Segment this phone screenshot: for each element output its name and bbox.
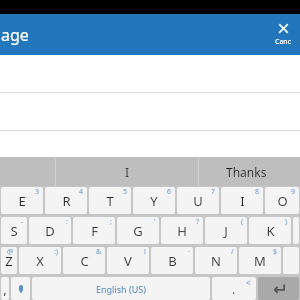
button[interactable]: X xyxy=(19,247,61,274)
staticText: 8 xyxy=(255,187,260,197)
staticText: B xyxy=(168,252,177,270)
other: Voice input xyxy=(11,277,30,300)
button[interactable]: Y xyxy=(133,187,175,214)
button[interactable]: Voice input xyxy=(11,277,30,300)
button[interactable]: R xyxy=(45,187,87,214)
button[interactable]: J xyxy=(205,217,247,244)
button[interactable]: F xyxy=(73,217,115,244)
staticText: 6 xyxy=(167,187,172,197)
staticText: age xyxy=(1,24,29,46)
staticText: R xyxy=(62,192,71,210)
staticText: 5 xyxy=(123,187,128,197)
staticText: I xyxy=(240,192,245,210)
staticText: :) xyxy=(54,247,58,257)
staticText: T xyxy=(106,192,114,210)
staticText: K xyxy=(266,222,275,240)
staticText: < xyxy=(246,277,251,288)
staticText: D xyxy=(45,222,55,240)
staticText: . xyxy=(232,281,236,297)
staticText: Y xyxy=(150,192,158,210)
button[interactable]: T xyxy=(89,187,131,214)
button[interactable]: B xyxy=(151,247,193,274)
button[interactable] xyxy=(293,217,299,244)
button[interactable]: N xyxy=(195,247,237,274)
button[interactable]: V xyxy=(107,247,149,274)
button[interactable]: M xyxy=(239,247,281,274)
button[interactable]: Z xyxy=(1,247,17,274)
button[interactable]: C xyxy=(63,247,105,274)
staticText: ' xyxy=(154,217,156,227)
button[interactable]: Cancel xyxy=(266,14,300,55)
button[interactable]: Thanks xyxy=(199,157,300,186)
staticText: E xyxy=(18,192,26,210)
button[interactable]: O xyxy=(265,187,299,214)
staticText: 9 xyxy=(291,187,296,197)
staticText: ! xyxy=(144,247,146,257)
button[interactable]: Enter xyxy=(258,277,299,300)
staticText: · xyxy=(188,247,190,257)
staticText: ( xyxy=(241,217,244,227)
staticText: X xyxy=(36,252,44,270)
staticText: , xyxy=(3,280,7,298)
button[interactable]: I xyxy=(56,157,198,186)
staticText: G xyxy=(133,222,143,240)
button[interactable]: U xyxy=(177,187,219,214)
staticText: F xyxy=(91,222,98,240)
staticText: C xyxy=(80,252,89,270)
button[interactable]: I xyxy=(221,187,263,214)
button[interactable]: D xyxy=(29,217,71,244)
staticText: H xyxy=(177,222,187,240)
button[interactable]: English (US) xyxy=(32,277,210,300)
staticText: Canc xyxy=(275,37,292,47)
staticText: : xyxy=(66,217,68,227)
other: Enter xyxy=(258,277,299,300)
button[interactable]: S xyxy=(1,217,27,244)
staticText: I xyxy=(125,164,130,180)
button[interactable]: G xyxy=(117,217,159,244)
staticText: Z xyxy=(5,252,13,270)
staticText: U xyxy=(193,192,203,210)
button[interactable]: E xyxy=(1,187,43,214)
button[interactable]: . xyxy=(212,277,256,300)
staticText: V xyxy=(124,252,132,270)
button[interactable] xyxy=(283,247,299,274)
button[interactable]: H xyxy=(161,217,203,244)
button[interactable]: K xyxy=(249,217,291,244)
staticText: ? xyxy=(196,217,200,227)
staticText: 4 xyxy=(79,187,84,197)
staticText: @ xyxy=(7,247,14,257)
staticText: $ xyxy=(273,247,278,257)
staticText: ) xyxy=(285,217,288,227)
staticText: ; xyxy=(110,217,112,227)
staticText: - xyxy=(21,217,24,227)
staticText: 3 xyxy=(35,187,40,197)
staticText: Thanks xyxy=(226,164,267,180)
staticText: S xyxy=(10,222,18,240)
staticText: O xyxy=(277,192,288,210)
staticText: & xyxy=(96,247,102,257)
staticText: / xyxy=(231,247,234,257)
button[interactable]: , xyxy=(1,277,9,300)
staticText: J xyxy=(224,222,228,240)
staticText: M xyxy=(254,252,266,270)
staticText: English (US) xyxy=(96,283,146,295)
staticText: N xyxy=(211,252,221,270)
staticText: 7 xyxy=(211,187,216,197)
